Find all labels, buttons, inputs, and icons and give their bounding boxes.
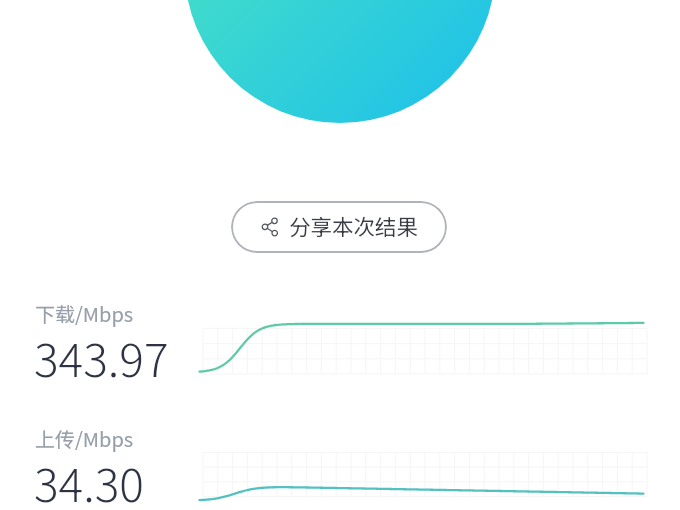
staticText: 34.30 (34, 449, 144, 510)
staticText: 343.97 (34, 324, 169, 391)
staticText: 分享本次结果 (289, 210, 419, 241)
staticText: 下载/Mbps (35, 299, 134, 328)
button[interactable]: Share (231, 201, 447, 253)
staticText: 上传/Mbps (35, 424, 134, 453)
other: Share (258, 212, 284, 238)
